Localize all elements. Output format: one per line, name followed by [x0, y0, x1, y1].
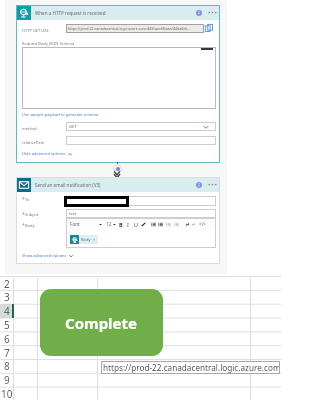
- staticText: When a HTTP request is received: [35, 10, 106, 16]
- staticText: </>: [199, 221, 206, 227]
- staticText: 4: [4, 304, 10, 318]
- staticText: Body: [25, 223, 35, 228]
- staticText: *: [22, 211, 25, 218]
- staticText: relativePath: [22, 140, 45, 145]
- staticText: Body: [81, 237, 91, 242]
- button[interactable]: When a HTTP request is received: [16, 5, 220, 20]
- staticText: B: [119, 221, 123, 228]
- staticText: 9: [4, 373, 10, 387]
- staticText: test: [69, 211, 77, 217]
- button[interactable]: Body: [70, 235, 98, 244]
- button[interactable]: Hide advanced options: [22, 151, 72, 156]
- button[interactable]: Copy URL: [204, 23, 214, 33]
- staticText: 6: [4, 332, 10, 346]
- staticText: I: [127, 221, 129, 228]
- staticText: Show advanced options: [22, 253, 67, 258]
- button[interactable]: More options: [207, 7, 218, 18]
- staticText: Request Body JSON Schema: [22, 41, 75, 46]
- button[interactable]: Complete: [40, 289, 163, 356]
- staticText: To: [25, 197, 30, 202]
- button[interactable]: Send an email notification (V3): [16, 177, 220, 192]
- staticText: HTTP GET URL: [22, 28, 49, 33]
- staticText: Font: [70, 221, 80, 227]
- staticText: *: [22, 196, 25, 203]
- staticText: Send an email notification (V3): [35, 182, 101, 188]
- staticText: GET: [69, 124, 77, 130]
- staticText: *: [22, 222, 25, 229]
- staticText: 7: [4, 346, 10, 360]
- button[interactable]: Use sample payload to generate schema: [22, 112, 99, 117]
- staticText: 5: [4, 318, 10, 332]
- button[interactable]: Show advanced options: [22, 253, 73, 258]
- staticText: 8: [4, 359, 10, 373]
- staticText: ×: [93, 237, 96, 242]
- staticText: https://prod-22.canadacentral.logic.azur…: [68, 26, 191, 31]
- button[interactable]: Insert a new step: [113, 164, 122, 173]
- staticText: 3: [4, 290, 10, 304]
- button[interactable]: GET: [66, 122, 216, 131]
- button[interactable]: Information: [194, 180, 203, 189]
- staticText: 12: [106, 221, 112, 227]
- staticText: https://prod-22.canadacentral.logic.azur…: [103, 362, 280, 373]
- staticText: method: [22, 126, 37, 131]
- staticText: 2: [4, 277, 10, 291]
- staticText: Hide advanced options: [22, 151, 66, 156]
- staticText: U: [134, 221, 138, 228]
- staticText: Complete: [65, 313, 138, 333]
- staticText: Subject: [25, 212, 39, 217]
- button[interactable]: More options: [207, 179, 218, 190]
- button[interactable]: Information: [194, 8, 203, 17]
- staticText: 10: [1, 387, 13, 400]
